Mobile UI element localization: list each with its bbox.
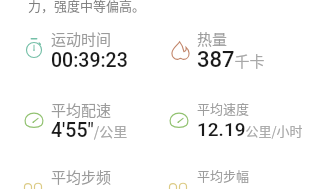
button[interactable]: 平均配速 <box>19 105 41 127</box>
staticText: 力，强度中等偏高。 <box>28 0 146 15</box>
button[interactable]: 热量 <box>166 36 187 57</box>
button[interactable]: 运动时间 <box>19 33 41 55</box>
staticText: 平均配速 <box>51 99 112 121</box>
staticText: 00:39:23 <box>51 49 128 72</box>
staticText: 平均步幅 <box>197 166 250 185</box>
staticText: 运动时间 <box>51 28 112 50</box>
staticText: 387千卡 <box>197 47 265 73</box>
button[interactable]: 平均步幅 <box>164 171 184 189</box>
staticText: 4'55"/公里 <box>51 119 128 142</box>
staticText: 平均速度 <box>197 99 250 118</box>
button[interactable]: 平均速度 <box>164 105 186 127</box>
staticText: 12.19公里/小时 <box>197 118 303 140</box>
staticText: 热量 <box>197 28 228 50</box>
button[interactable]: 平均步频 <box>19 171 39 189</box>
staticText: 平均步频 <box>51 166 112 188</box>
